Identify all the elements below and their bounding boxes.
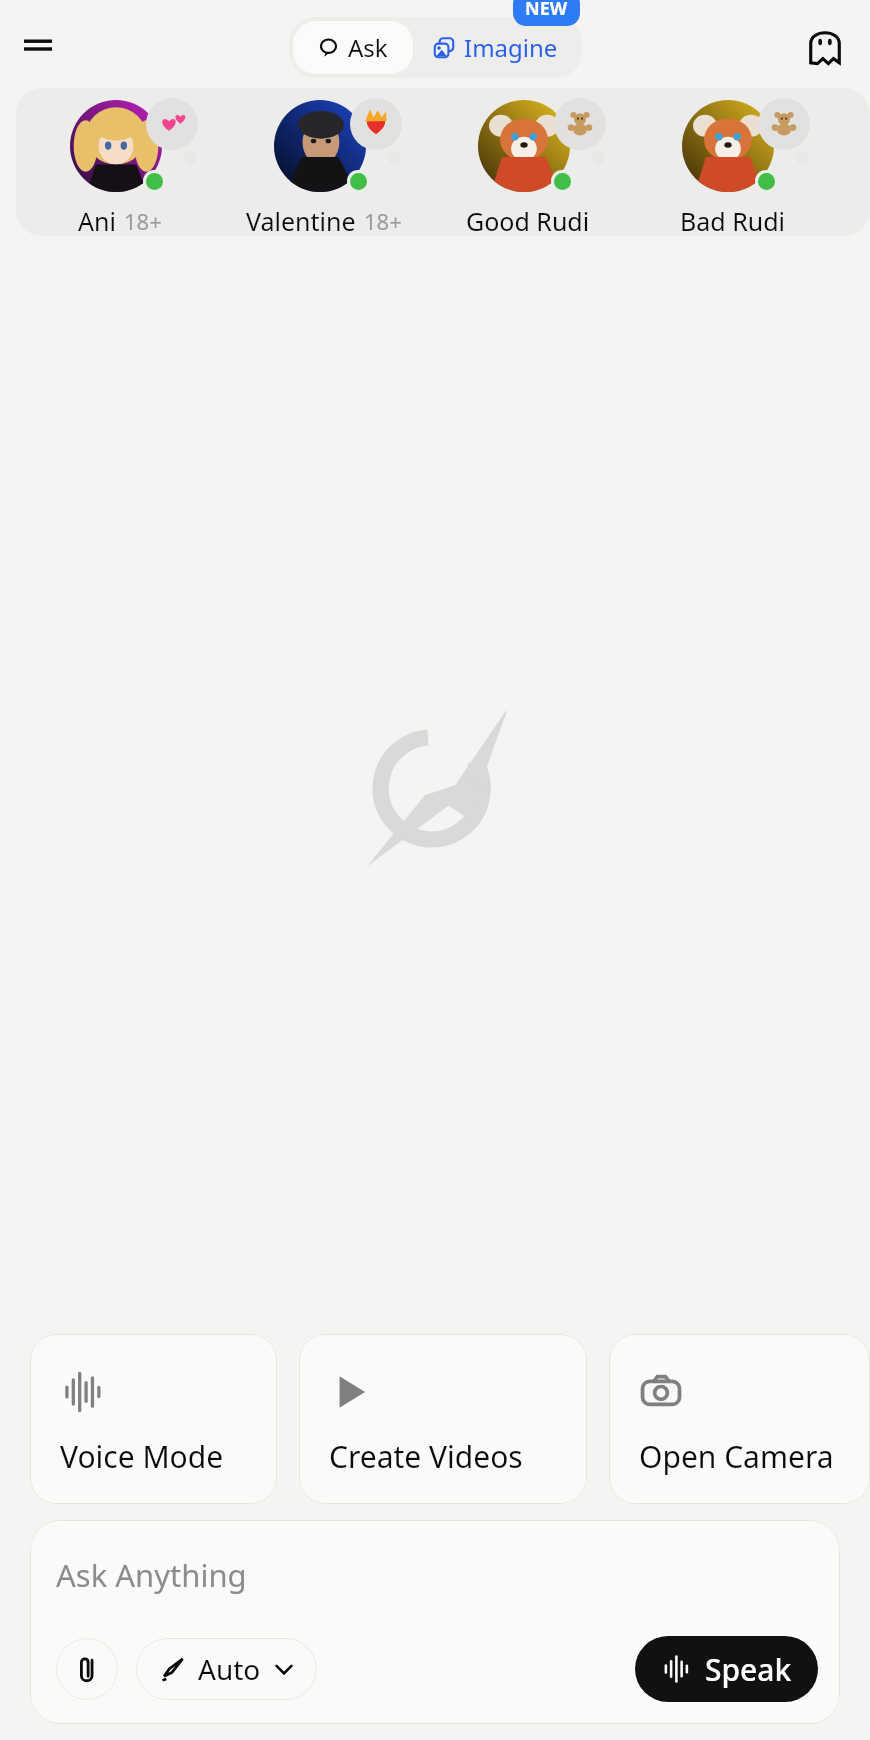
button[interactable]: Profile (798, 19, 852, 73)
staticText: Voice Mode (60, 1436, 224, 1477)
button[interactable]: Open Camera (609, 1334, 870, 1504)
button[interactable]: Create Videos (299, 1334, 587, 1504)
button[interactable]: Auto (136, 1638, 317, 1700)
staticText: Bad Rudi (680, 204, 785, 236)
button[interactable]: Good Rudi (430, 96, 626, 236)
staticText: 18+ (364, 206, 402, 236)
staticText: Valentine (246, 204, 356, 236)
staticText: Ask (348, 31, 388, 64)
button[interactable]: Menu (12, 20, 64, 72)
button[interactable]: Voice Mode (30, 1334, 277, 1504)
button[interactable]: Bad Rudi (634, 96, 830, 236)
staticText: Auto (198, 1650, 261, 1688)
staticText: Ask Anything (56, 1554, 247, 1596)
staticText: Speak (705, 1649, 792, 1690)
button[interactable]: Ani (22, 96, 218, 236)
button[interactable]: Imagine (419, 17, 582, 78)
staticText: 18+ (124, 206, 162, 236)
staticText: Imagine (464, 31, 558, 64)
staticText: Ani (78, 204, 116, 236)
staticText: Good Rudi (466, 204, 590, 236)
button[interactable]: Attach file (56, 1638, 118, 1700)
button[interactable]: Ask (292, 20, 414, 75)
staticText: Open Camera (639, 1436, 834, 1477)
staticText: NEW (525, 0, 568, 21)
button[interactable]: Valentine (226, 96, 422, 236)
button[interactable]: Ask Anything (30, 1520, 840, 1724)
button[interactable]: Speak (635, 1636, 818, 1702)
staticText: Create Videos (329, 1436, 523, 1477)
